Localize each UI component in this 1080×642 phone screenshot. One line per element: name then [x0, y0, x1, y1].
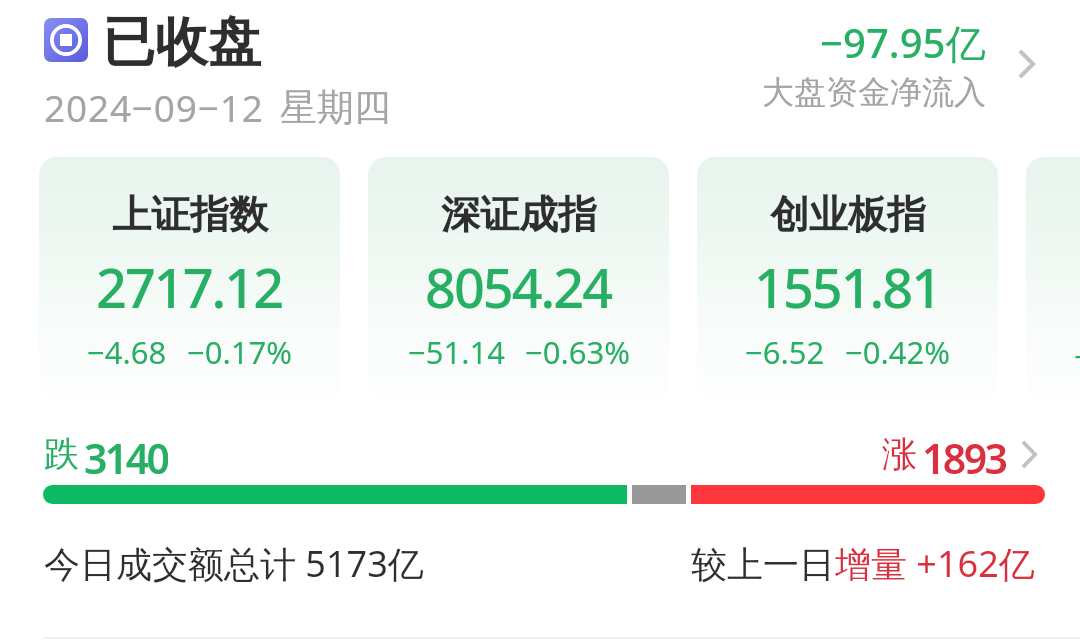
staticText: 今日成交额总计 5173亿	[44, 539, 424, 588]
button[interactable]: −97.95亿	[669, 15, 1035, 112]
staticText: 创业板指	[770, 190, 926, 239]
button[interactable]: 已收盘	[102, 9, 261, 76]
staticText: −6.52	[745, 331, 825, 373]
button[interactable]: 创业板指	[697, 157, 998, 399]
staticText: 星期四	[280, 84, 391, 131]
staticText: 3140	[84, 430, 168, 478]
staticText: 1893	[922, 430, 1006, 478]
staticText: 较上一日增量 +162亿	[691, 539, 1035, 588]
staticText: −4.68	[87, 331, 167, 373]
staticText: −0.42%	[845, 331, 950, 373]
staticText: 深证成指	[441, 190, 597, 239]
staticText: 2024−09−12	[44, 82, 264, 132]
button[interactable]: 上证指数	[39, 157, 340, 399]
staticText: −3.71	[1074, 335, 1080, 377]
staticText: −0.63%	[525, 331, 630, 373]
staticText: 上证指数	[112, 190, 268, 239]
staticText: −51.14	[408, 331, 505, 373]
staticText: 跌	[44, 432, 79, 476]
button[interactable]: 2024−09−12	[44, 82, 391, 132]
other: View capital flow detail	[1018, 49, 1035, 79]
other: View rise fall detail	[1021, 440, 1037, 469]
button[interactable]: 涨	[882, 430, 1037, 478]
staticText: −0.17%	[187, 331, 292, 373]
staticText: −97.95亿	[820, 15, 986, 70]
button[interactable]: 跌	[44, 430, 168, 478]
staticText: 8054.24	[425, 250, 612, 324]
button[interactable]: 深证成指	[368, 157, 669, 399]
button[interactable]: 今日成交额总计 5173亿	[44, 539, 424, 588]
staticText: 涨	[882, 432, 917, 476]
button[interactable]: 科创50	[1026, 157, 1080, 399]
button[interactable]: Market closed	[44, 18, 88, 62]
staticText: 1551.81	[754, 250, 941, 324]
button[interactable]: Advance decline ratio bar	[43, 485, 1045, 504]
button[interactable]: 较上一日增量 +162亿	[691, 539, 1035, 588]
staticText: 大盘资金净流入	[762, 72, 986, 112]
staticText: 2717.12	[96, 250, 283, 324]
staticText: 已收盘	[102, 9, 261, 76]
